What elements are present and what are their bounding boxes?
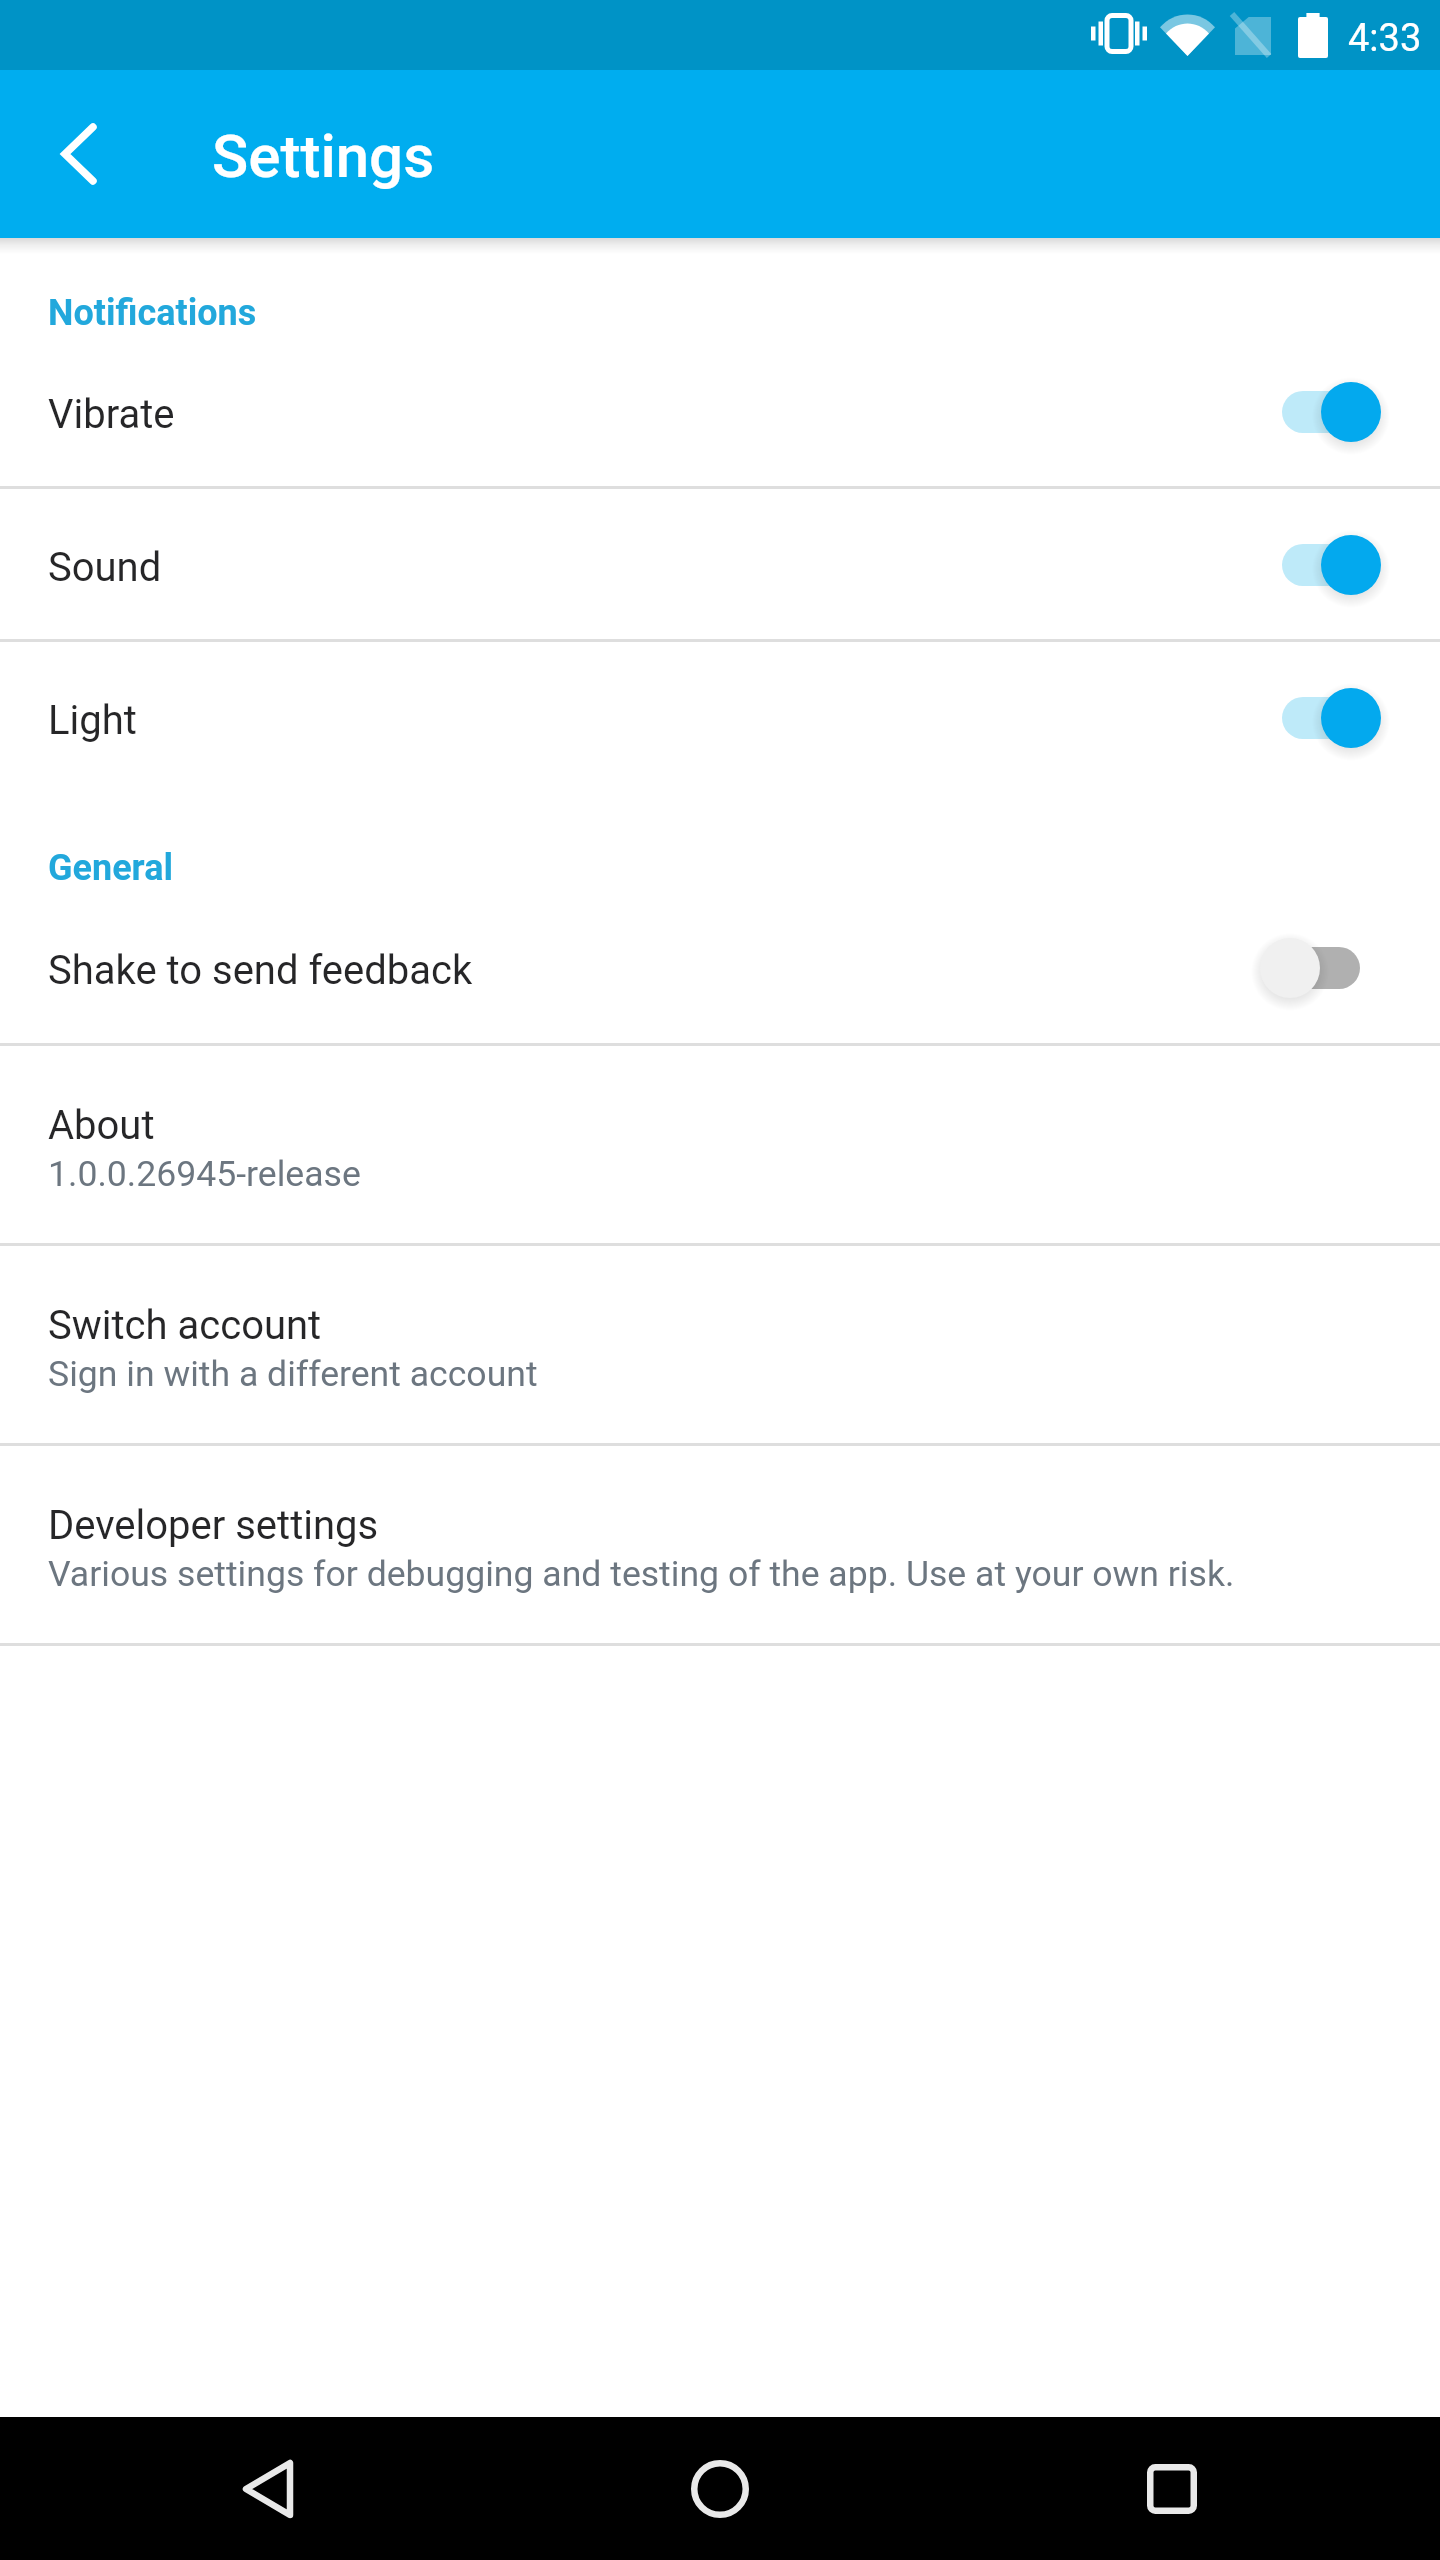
- staticText: Shake to send feedback: [48, 947, 1261, 994]
- button[interactable]: About: [0, 1088, 1440, 1237]
- staticText: 1.0.0.26945-release: [48, 1153, 361, 1195]
- staticText: Sound: [48, 544, 1261, 591]
- button[interactable]: Back: [198, 2419, 338, 2559]
- button[interactable]: Recent apps: [1102, 2419, 1242, 2559]
- staticText: Developer settings: [48, 1502, 379, 1549]
- staticText: General: [48, 847, 174, 889]
- button[interactable]: Light: [0, 642, 1440, 794]
- staticText: Sign in with a different account: [48, 1353, 538, 1395]
- staticText: Notifications: [48, 292, 257, 334]
- staticText: Vibrate: [48, 391, 1261, 438]
- button[interactable]: Vibrate: [0, 336, 1440, 488]
- staticText: 4:33: [1348, 16, 1422, 61]
- button[interactable]: Switch account: [0, 1288, 1440, 1437]
- button[interactable]: Home: [650, 2419, 790, 2559]
- button[interactable]: Navigate up: [21, 96, 137, 212]
- staticText: Switch account: [48, 1302, 322, 1349]
- button[interactable]: Shake to send feedback: [0, 892, 1440, 1044]
- button[interactable]: Developer settings: [0, 1488, 1440, 1637]
- staticText: Settings: [212, 121, 435, 191]
- staticText: About: [48, 1102, 155, 1149]
- staticText: Light: [48, 697, 1261, 744]
- staticText: Various settings for debugging and testi…: [48, 1553, 1235, 1595]
- button[interactable]: Sound: [0, 489, 1440, 641]
